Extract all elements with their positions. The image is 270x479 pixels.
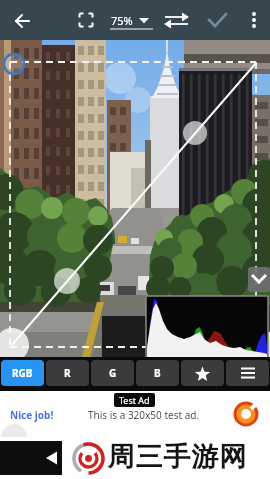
button[interactable]: RGB xyxy=(1,360,44,386)
button[interactable]: 周三手游网 xyxy=(0,437,270,479)
staticText: This is a 320x50 test ad. xyxy=(88,408,200,422)
button[interactable] xyxy=(200,0,236,40)
staticText: G xyxy=(109,366,117,380)
button[interactable]: B xyxy=(136,360,179,386)
staticText: RGB xyxy=(12,366,33,380)
button[interactable] xyxy=(68,0,104,40)
button[interactable]: G xyxy=(91,360,134,386)
staticText: 周三手游网 xyxy=(107,440,247,474)
staticText: Nice job! xyxy=(10,408,54,422)
button[interactable] xyxy=(226,360,269,386)
staticText: Test Ad xyxy=(119,394,150,406)
staticText: R xyxy=(64,366,71,380)
button[interactable]: R xyxy=(46,360,89,386)
button[interactable] xyxy=(240,0,270,40)
button[interactable] xyxy=(0,441,62,475)
button[interactable]: Test Ad xyxy=(0,391,270,437)
staticText: B xyxy=(154,366,161,380)
button[interactable] xyxy=(160,0,196,40)
button[interactable] xyxy=(6,0,40,40)
staticText: 75% xyxy=(111,13,133,28)
button[interactable] xyxy=(181,360,224,386)
button[interactable] xyxy=(248,267,270,292)
button[interactable] xyxy=(106,0,156,40)
